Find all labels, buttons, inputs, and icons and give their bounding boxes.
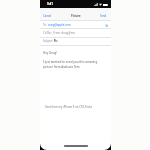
- button[interactable]: Add recipient: [105, 24, 108, 27]
- staticText: Cancel: [43, 14, 52, 18]
- staticText: Send: [100, 14, 107, 18]
- button[interactable]: Subject: Pic: [40, 37, 111, 45]
- staticText: Hey Doug!: [43, 51, 58, 55]
- button[interactable]: Send: [100, 14, 107, 18]
- staticText: Cc/Bcc, From: doug@me: [43, 31, 76, 35]
- staticText: Picture: [71, 14, 81, 18]
- button[interactable]: Cc/Bcc, From: doug@me: [40, 29, 111, 37]
- staticText: craig@apple.com: [48, 23, 71, 27]
- staticText: I just wanted to send you this amazing p…: [43, 60, 98, 69]
- staticText: To:: [43, 23, 47, 27]
- button[interactable]: Cancel: [43, 14, 52, 18]
- button[interactable]: To:: [40, 21, 111, 29]
- staticText: Sent from my iPhone X on CSS-Tricks: [45, 105, 93, 109]
- staticText: 9:41: [47, 2, 53, 6]
- staticText: Subject: Pic: [43, 39, 58, 43]
